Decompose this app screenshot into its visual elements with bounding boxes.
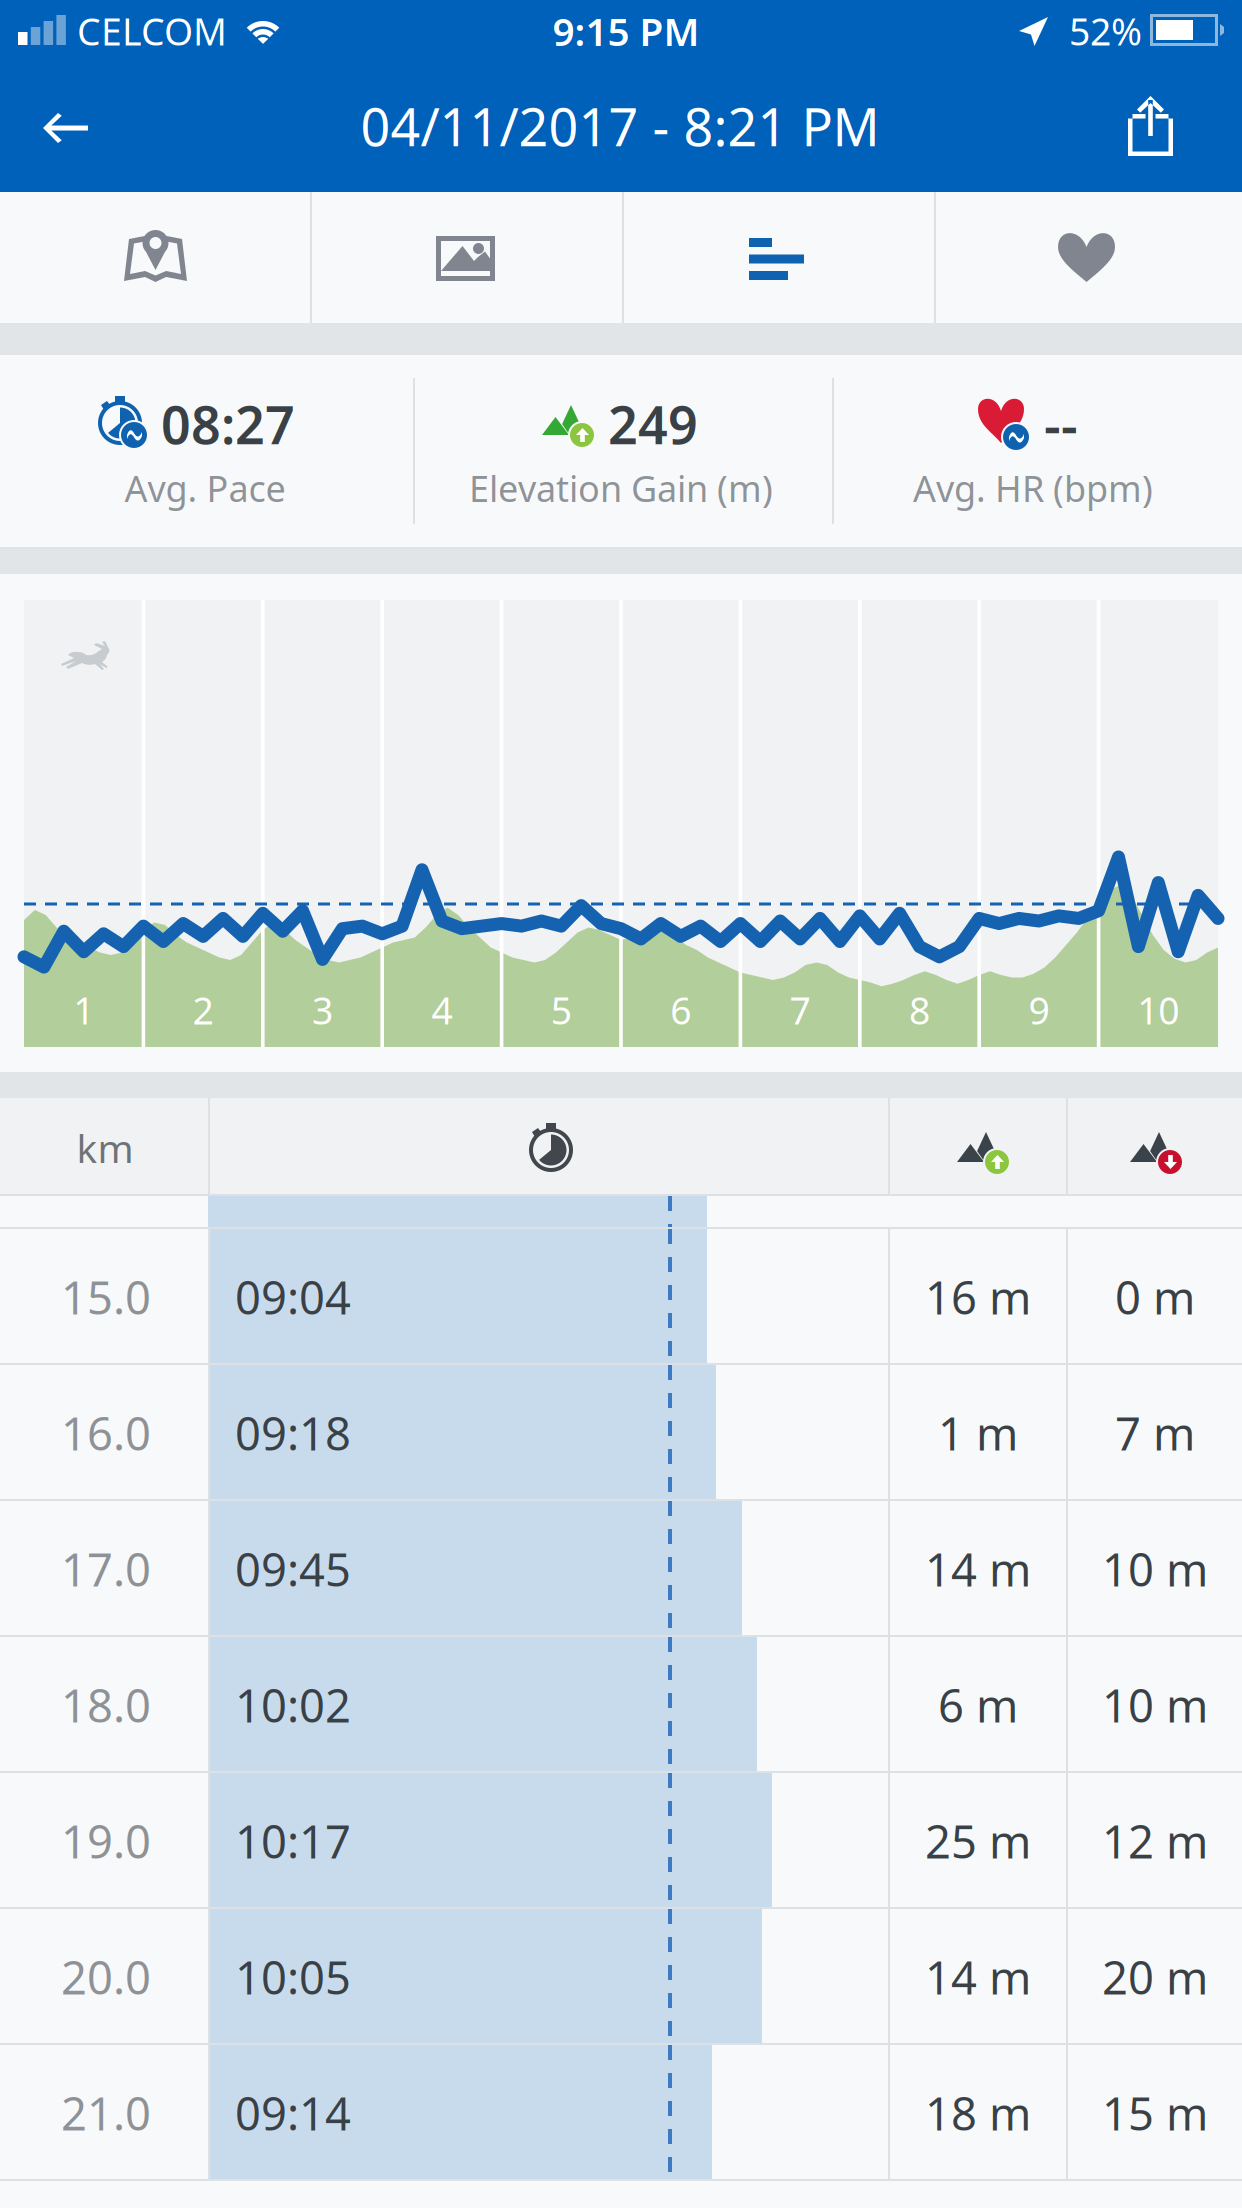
staticText: Elevation Gain (m)	[469, 464, 773, 512]
staticText: 10	[1137, 985, 1179, 1035]
staticText: Avg. HR (bpm)	[913, 464, 1153, 512]
staticText: 09:04	[235, 1267, 351, 1327]
staticText: 9:15 PM	[552, 5, 699, 57]
staticText: 10 m	[1102, 1675, 1208, 1735]
staticText: 1 m	[938, 1403, 1018, 1463]
staticText: 14 m	[925, 1947, 1031, 2007]
staticText: 0 m	[1115, 1267, 1195, 1327]
staticText: 09:45	[235, 1539, 351, 1599]
staticText: 09:14	[235, 2083, 351, 2143]
button[interactable]: 16.0	[0, 1365, 1242, 1501]
staticText: 7	[790, 985, 811, 1035]
staticText: 12 m	[1102, 1811, 1208, 1871]
button[interactable]: 20.0	[0, 1909, 1242, 2045]
staticText: 5	[551, 985, 572, 1035]
staticText: 04/11/2017 - 8:21 PM	[360, 91, 879, 161]
staticText: 09:18	[235, 1403, 351, 1463]
staticText: 25 m	[925, 1811, 1031, 1871]
button[interactable]: 17.0	[0, 1501, 1242, 1637]
staticText: 10 m	[1102, 1539, 1208, 1599]
button[interactable]: 21.0	[0, 2045, 1242, 2181]
button[interactable]: Map	[0, 192, 310, 323]
staticText: 7 m	[1115, 1403, 1195, 1463]
staticText: 249	[608, 389, 698, 459]
staticText: Avg. Pace	[124, 464, 285, 512]
button[interactable]: 15.0	[0, 1229, 1242, 1365]
button[interactable]: Splits	[624, 192, 934, 323]
staticText: 4	[431, 985, 452, 1035]
staticText: 17.0	[61, 1539, 151, 1599]
staticText: 21.0	[61, 2083, 151, 2143]
staticText: --	[1044, 389, 1078, 459]
button[interactable]: Share	[1102, 60, 1242, 192]
staticText: 6	[670, 985, 691, 1035]
staticText: 19.0	[61, 1811, 151, 1871]
staticText: 20 m	[1102, 1947, 1208, 2007]
staticText: 08:27	[161, 389, 295, 459]
staticText: 15 m	[1102, 2083, 1208, 2143]
button[interactable]: Back	[0, 60, 140, 192]
button[interactable]: 18.0	[0, 1637, 1242, 1773]
staticText: 15.0	[61, 1267, 151, 1327]
button[interactable]: 19.0	[0, 1773, 1242, 1909]
staticText: CELCOM	[77, 6, 227, 56]
staticText: 6 m	[938, 1675, 1018, 1735]
staticText: 9	[1028, 985, 1049, 1035]
staticText: 8	[909, 985, 930, 1035]
staticText: 14 m	[925, 1539, 1031, 1599]
staticText: 20.0	[61, 1947, 151, 2007]
staticText: 16 m	[925, 1267, 1031, 1327]
button[interactable]: Photos	[312, 192, 622, 323]
staticText: 16.0	[61, 1403, 151, 1463]
staticText: 10:05	[235, 1947, 351, 2007]
staticText: 18.0	[61, 1675, 151, 1735]
staticText: 1	[73, 985, 94, 1035]
button[interactable]: Heart rate	[936, 192, 1242, 323]
staticText: 3	[312, 985, 333, 1035]
staticText: 52%	[1069, 6, 1142, 56]
staticText: 2	[193, 985, 214, 1035]
staticText: 18 m	[925, 2083, 1031, 2143]
staticText: km	[76, 1122, 133, 1174]
staticText: 10:02	[235, 1675, 351, 1735]
staticText: 10:17	[235, 1811, 351, 1871]
